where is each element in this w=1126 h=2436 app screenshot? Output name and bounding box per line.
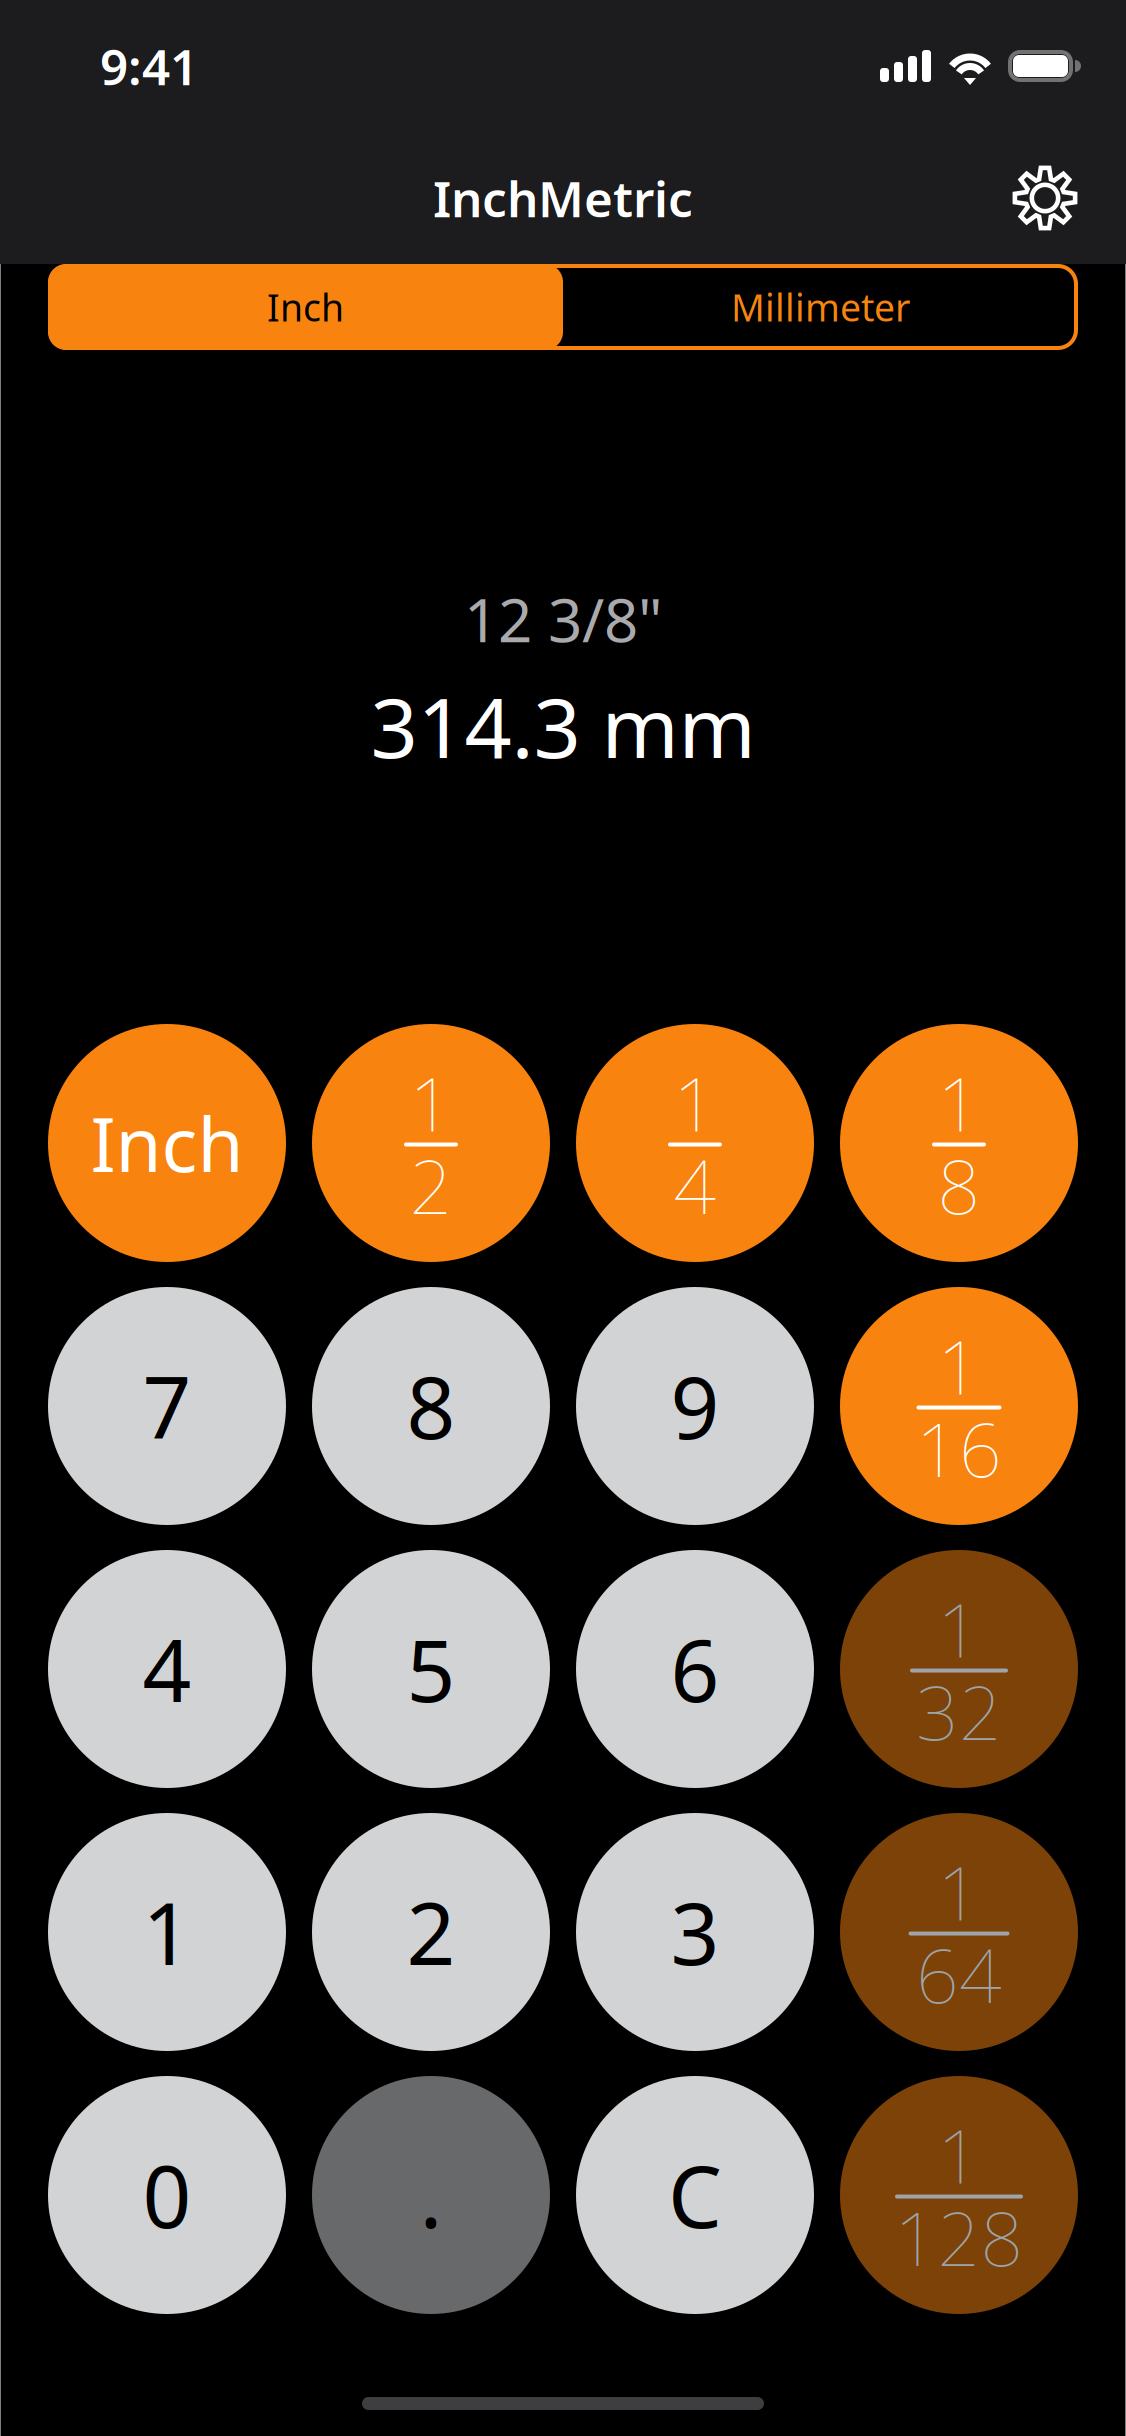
staticText: 128 (894, 2187, 1023, 2287)
button[interactable]: 2 (312, 1813, 550, 2051)
staticText: 1 (937, 2105, 980, 2204)
staticText: Inch (267, 282, 344, 332)
button[interactable]: 6 (576, 1550, 814, 1788)
staticText: 0 (142, 2138, 191, 2252)
staticText: 1 (937, 1579, 980, 1678)
button[interactable]: 1 (840, 1813, 1078, 2051)
button[interactable]: 1 (840, 1024, 1078, 1262)
button[interactable]: 0 (48, 2076, 286, 2314)
staticText: 2 (406, 1875, 455, 1989)
button[interactable]: 3 (576, 1813, 814, 2051)
staticText: 3 (670, 1875, 719, 1989)
staticText: 32 (916, 1661, 1002, 1761)
staticText: 8 (937, 1135, 980, 1235)
staticText: 1 (937, 1316, 980, 1415)
button[interactable]: . (312, 2076, 550, 2314)
staticText: 12 3/8" (464, 579, 662, 659)
staticText: 5 (406, 1612, 455, 1726)
staticText: 1 (937, 1842, 980, 1941)
button[interactable]: 1 (576, 1024, 814, 1262)
staticText: 9:41 (100, 33, 198, 99)
staticText: 4 (673, 1135, 716, 1235)
staticText: 1 (142, 1875, 191, 1989)
button[interactable]: 9 (576, 1287, 814, 1525)
button[interactable]: 8 (312, 1287, 550, 1525)
staticText: 7 (142, 1349, 191, 1463)
button[interactable]: Millimeter (563, 264, 1078, 350)
staticText: C (668, 2138, 722, 2252)
button[interactable]: 4 (48, 1550, 286, 1788)
staticText: InchMetric (433, 165, 693, 231)
staticText: 1 (937, 1053, 980, 1152)
button[interactable]: 7 (48, 1287, 286, 1525)
staticText: 9 (670, 1349, 719, 1463)
button[interactable]: 1 (840, 2076, 1078, 2314)
button[interactable]: 1 (840, 1550, 1078, 1788)
button[interactable]: 5 (312, 1550, 550, 1788)
staticText: 2 (409, 1135, 452, 1235)
button[interactable]: Inch (48, 1024, 286, 1262)
button[interactable]: 1 (312, 1024, 550, 1262)
staticText: 16 (916, 1398, 1002, 1498)
button[interactable]: C (576, 2076, 814, 2314)
button[interactable]: Settings (996, 149, 1094, 247)
button[interactable]: Inch (48, 264, 563, 350)
staticText: . (419, 2138, 442, 2252)
staticText: Millimeter (731, 282, 910, 332)
staticText: 4 (142, 1612, 191, 1726)
button[interactable]: 1 (48, 1813, 286, 2051)
staticText: 8 (406, 1349, 455, 1463)
staticText: 6 (670, 1612, 719, 1726)
button[interactable]: 1 (840, 1287, 1078, 1525)
staticText: 1 (409, 1053, 452, 1152)
staticText: Inch (90, 1093, 243, 1193)
staticText: 314.3 mm (370, 671, 755, 781)
staticText: 1 (673, 1053, 716, 1152)
staticText: 64 (916, 1924, 1002, 2024)
